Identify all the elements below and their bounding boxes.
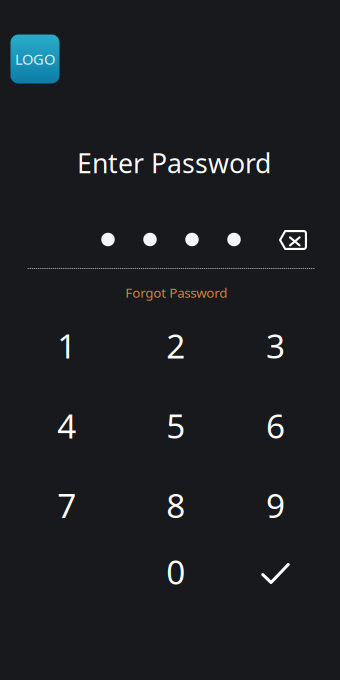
staticText: Enter Password <box>77 145 271 180</box>
button[interactable]: 6 <box>227 387 323 463</box>
button[interactable]: 4 <box>19 387 115 463</box>
staticText: 9 <box>266 483 285 527</box>
button[interactable]: Confirm <box>227 535 323 611</box>
button[interactable]: 7 <box>19 467 115 543</box>
staticText: 0 <box>166 549 185 594</box>
button[interactable]: 5 <box>128 387 224 463</box>
staticText: 6 <box>266 403 285 448</box>
staticText: 5 <box>166 403 185 448</box>
staticText: 2 <box>166 323 185 368</box>
button[interactable]: Delete <box>268 219 318 261</box>
staticText: 1 <box>57 323 76 368</box>
button[interactable]: 1 <box>19 307 115 383</box>
button[interactable]: Forgot Password <box>111 280 241 306</box>
staticText: Forgot Password <box>125 284 227 301</box>
staticText: 4 <box>57 403 76 448</box>
button[interactable]: 0 <box>128 533 224 609</box>
button[interactable]: 2 <box>128 307 224 383</box>
staticText: 8 <box>166 483 185 527</box>
staticText: 7 <box>57 483 76 527</box>
button[interactable]: 3 <box>227 307 323 383</box>
button[interactable]: 9 <box>227 467 323 543</box>
button[interactable]: 8 <box>128 467 224 543</box>
staticText: LOGO <box>15 49 55 69</box>
staticText: 3 <box>266 323 285 368</box>
